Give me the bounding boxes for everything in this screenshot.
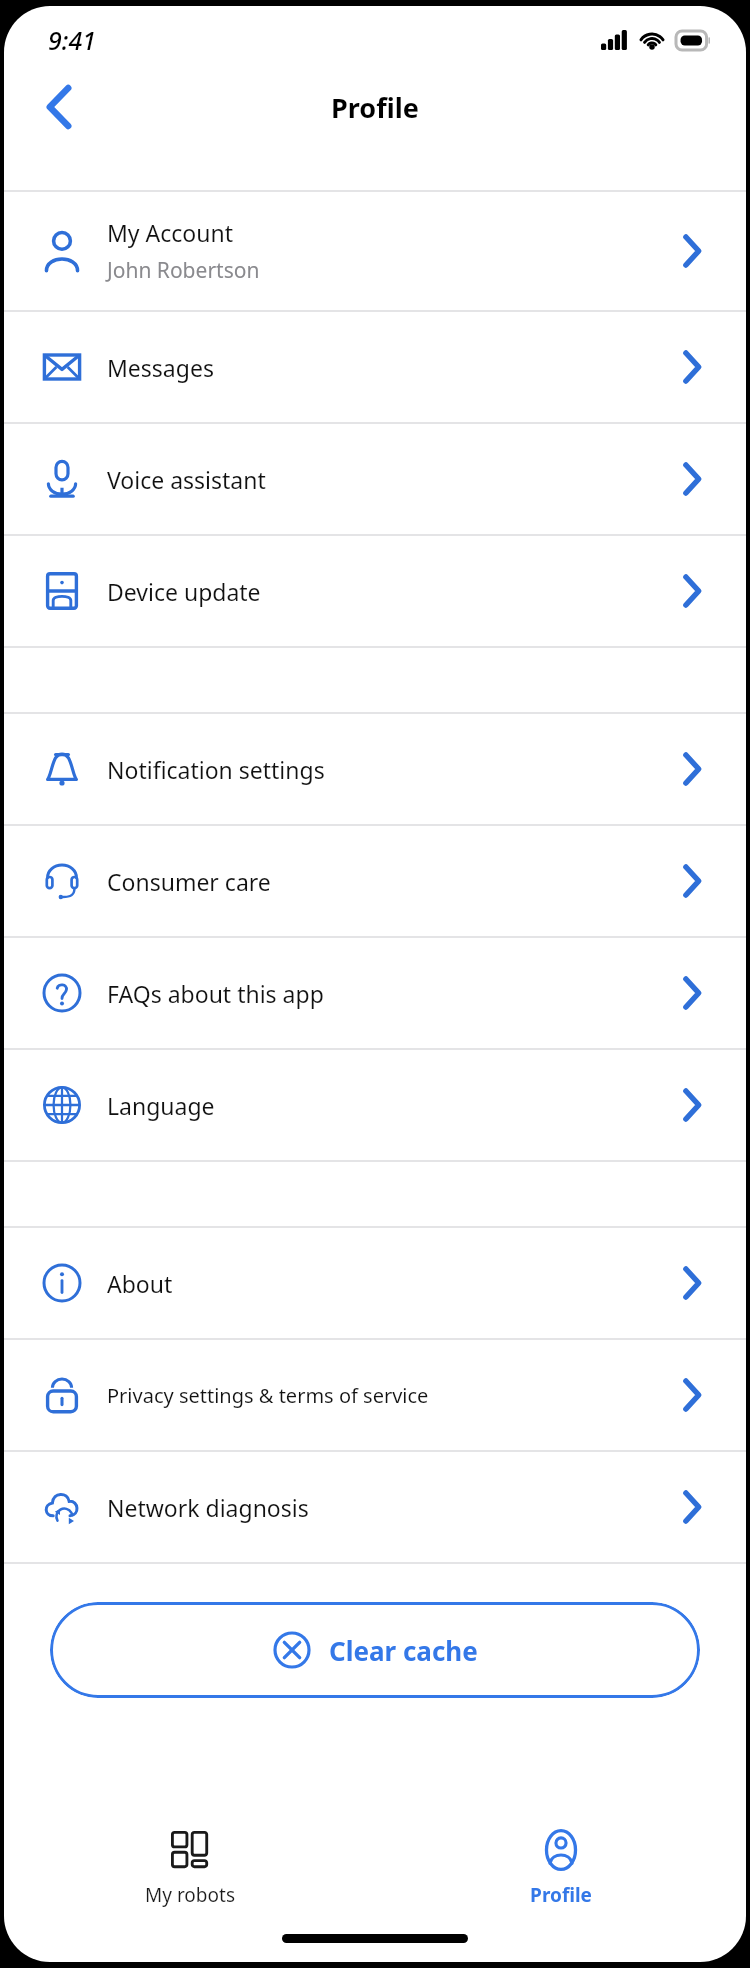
staticText: Device update (107, 576, 684, 607)
button[interactable]: FAQs about this app (4, 938, 746, 1048)
button[interactable]: Profile (375, 1812, 746, 1924)
button[interactable]: About (4, 1228, 746, 1338)
staticText: John Robertson (107, 256, 260, 285)
button[interactable]: Device update (4, 536, 746, 646)
staticText: Clear cache (329, 1633, 478, 1668)
staticText: My Account (107, 217, 233, 248)
button[interactable]: Back (28, 76, 90, 138)
button[interactable]: Messages (4, 312, 746, 422)
staticText: My robots (145, 1882, 235, 1908)
staticText: Profile (331, 89, 419, 126)
staticText: Consumer care (107, 866, 684, 897)
staticText: Language (107, 1090, 684, 1121)
staticText: 9:41 (48, 23, 96, 57)
staticText: Profile (530, 1882, 592, 1908)
button[interactable]: Network diagnosis (4, 1452, 746, 1562)
button[interactable]: My Account (4, 192, 746, 310)
staticText: Voice assistant (107, 464, 684, 495)
staticText: Messages (107, 352, 684, 383)
button[interactable]: My robots (4, 1812, 375, 1924)
staticText: FAQs about this app (107, 978, 684, 1009)
button[interactable]: Notification settings (4, 714, 746, 824)
button[interactable]: Privacy settings & terms of service (4, 1340, 746, 1450)
staticText: Network diagnosis (107, 1492, 684, 1523)
button[interactable]: Language (4, 1050, 746, 1160)
staticText: Notification settings (107, 754, 684, 785)
button[interactable]: Consumer care (4, 826, 746, 936)
button[interactable]: Clear cache (50, 1602, 700, 1698)
staticText: Privacy settings & terms of service (107, 1382, 684, 1409)
staticText: About (107, 1268, 684, 1299)
button[interactable]: Voice assistant (4, 424, 746, 534)
